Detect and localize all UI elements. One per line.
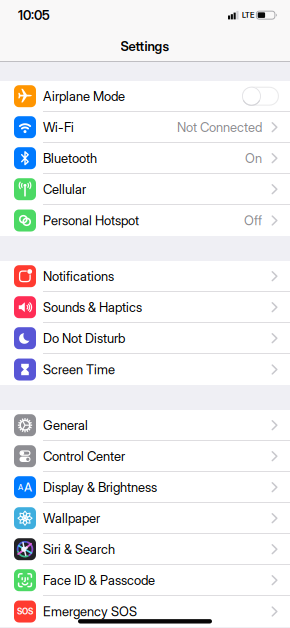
button[interactable]: Wallpaper: [0, 503, 290, 534]
button[interactable]: Notifications: [0, 261, 290, 292]
button[interactable]: Sounds & Haptics: [0, 292, 290, 323]
button[interactable]: Control Center: [0, 441, 290, 472]
staticText: 10:05: [18, 7, 50, 23]
staticText: On: [245, 150, 262, 166]
button[interactable]: Personal Hotspot: [0, 205, 290, 236]
button[interactable]: A: [0, 472, 290, 503]
staticText: Control Center: [43, 448, 125, 464]
staticText: Bluetooth: [43, 150, 97, 166]
staticText: Emergency SOS: [43, 604, 137, 619]
button[interactable]: Bluetooth: [0, 143, 290, 174]
button[interactable]: Siri & Search: [0, 534, 290, 565]
staticText: Siri & Search: [43, 541, 115, 557]
staticText: A: [18, 483, 23, 492]
button[interactable]: Screen Time: [0, 354, 290, 385]
staticText: Settings: [120, 39, 169, 54]
button[interactable]: General: [0, 410, 290, 441]
staticText: Cellular: [43, 181, 86, 197]
staticText: Wallpaper: [43, 510, 100, 526]
button[interactable]: Do Not Disturb: [0, 323, 290, 354]
staticText: Face ID & Passcode: [43, 572, 155, 588]
staticText: Airplane Mode: [43, 88, 125, 104]
button[interactable]: Face ID & Passcode: [0, 565, 290, 596]
button[interactable]: Airplane Mode: [242, 87, 279, 106]
button[interactable]: SOS: [0, 596, 290, 627]
staticText: Not Connected: [177, 119, 262, 135]
staticText: Do Not Disturb: [43, 330, 125, 346]
staticText: A: [24, 480, 32, 494]
staticText: General: [43, 417, 88, 433]
button[interactable]: Wi-Fi: [0, 112, 290, 143]
staticText: Display & Brightness: [43, 479, 157, 495]
button[interactable]: Cellular: [0, 174, 290, 205]
staticText: Notifications: [43, 268, 114, 284]
staticText: SOS: [17, 607, 33, 616]
staticText: Sounds & Haptics: [43, 299, 142, 315]
staticText: Wi-Fi: [43, 119, 74, 135]
staticText: LTE: [242, 11, 254, 19]
staticText: Off: [244, 213, 262, 228]
staticText: Screen Time: [43, 362, 115, 377]
staticText: Personal Hotspot: [43, 213, 139, 228]
